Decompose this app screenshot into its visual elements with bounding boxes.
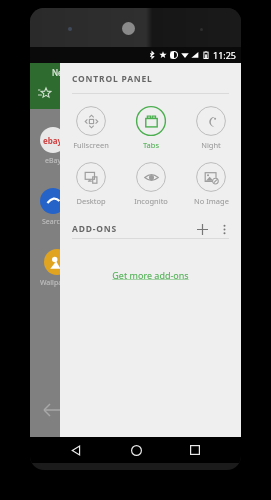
staticText: ADD-ONS: [72, 223, 117, 235]
staticText: Search: [42, 217, 65, 227]
button[interactable]: Home: [123, 437, 149, 463]
button[interactable]: More options: [215, 220, 233, 238]
staticText: Night: [201, 140, 221, 150]
button[interactable]: Desktop: [60, 160, 121, 208]
staticText: ebay: [43, 135, 63, 146]
staticText: Wallpaper: [40, 278, 74, 288]
staticText: Get more add-ons: [112, 269, 189, 281]
button[interactable]: Night: [181, 104, 241, 152]
staticText: No Image: [194, 196, 229, 206]
button[interactable]: Recent apps: [182, 437, 208, 463]
button[interactable]: Incognito: [121, 160, 181, 208]
staticText: 11:25: [213, 49, 237, 61]
button[interactable]: No Image: [181, 160, 241, 208]
button[interactable]: Get more add-ons: [108, 265, 193, 285]
button[interactable]: Tabs: [121, 104, 181, 152]
button[interactable]: Back: [63, 437, 89, 463]
staticText: Tabs: [143, 140, 159, 150]
staticText: Desktop: [76, 196, 106, 206]
staticText: New: [52, 67, 69, 78]
button[interactable]: Fullscreen: [60, 104, 121, 152]
staticText: Fullscreen: [73, 140, 109, 150]
staticText: CONTROL PANEL: [72, 73, 153, 85]
staticText: eBay: [45, 156, 61, 166]
button[interactable]: Add add-on: [193, 220, 211, 238]
staticText: Incognito: [134, 196, 168, 206]
